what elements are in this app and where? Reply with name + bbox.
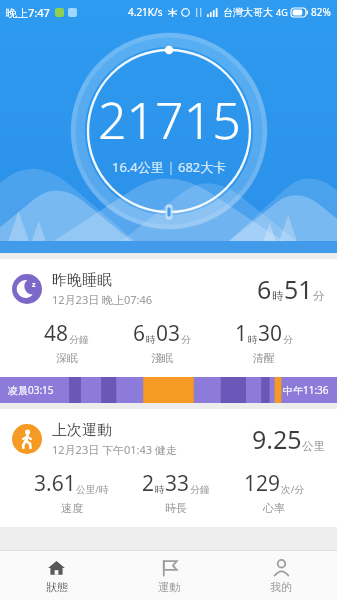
staticText: 我的 xyxy=(270,580,292,594)
staticText: 3.61 xyxy=(34,469,76,498)
staticText: | xyxy=(164,158,178,176)
staticText: 時 xyxy=(155,484,165,496)
staticText: 清醒 xyxy=(253,351,275,365)
staticText: 凌晨03:15 xyxy=(8,383,54,397)
staticText: 48 xyxy=(44,319,69,348)
button[interactable]: 運動 xyxy=(113,551,225,600)
staticText: 時 xyxy=(248,334,258,346)
staticText: 分 xyxy=(313,289,325,303)
staticText: 狀態 xyxy=(46,580,68,594)
staticText: 16.4公里 xyxy=(112,158,164,176)
staticText: 深眠 xyxy=(56,351,78,365)
staticText: 運動 xyxy=(158,580,180,594)
staticText: 4G xyxy=(276,6,288,18)
staticText: 21715 xyxy=(98,86,241,154)
staticText: 分 xyxy=(283,334,293,346)
staticText: 心率 xyxy=(263,501,285,515)
staticText: 淺眠 xyxy=(151,351,173,365)
staticText: 公里 xyxy=(302,439,325,453)
staticText: 公里/時 xyxy=(76,483,109,496)
staticText: 1 xyxy=(235,319,248,348)
button[interactable]: 狀態 xyxy=(0,551,113,600)
staticText: 晚上7:47 xyxy=(6,5,50,20)
button[interactable]: 上次運動 xyxy=(0,409,337,527)
button[interactable]: z xyxy=(0,259,337,403)
staticText: 82% xyxy=(311,5,331,19)
staticText: 分 xyxy=(181,334,191,346)
staticText: 51 xyxy=(284,272,313,306)
staticText: 時 xyxy=(146,334,156,346)
button[interactable]: 我的 xyxy=(225,551,337,600)
staticText: 上次運動 xyxy=(52,421,112,440)
staticText: 682大卡 xyxy=(178,158,227,176)
staticText: 中午11:36 xyxy=(283,383,329,397)
staticText: 30 xyxy=(258,319,283,348)
staticText: 03 xyxy=(156,319,181,348)
staticText: 速度 xyxy=(61,501,83,515)
staticText: z xyxy=(32,280,36,290)
staticText: 9.25 xyxy=(252,422,302,456)
staticText: 6 xyxy=(257,272,272,306)
staticText: 12月23日 下午01:43 健走 xyxy=(52,442,178,457)
staticText: 4.21K/s xyxy=(128,5,163,19)
staticText: 33 xyxy=(165,469,190,498)
staticText: 6 xyxy=(133,319,146,348)
staticText: 時 xyxy=(272,289,284,303)
staticText: 2 xyxy=(142,469,155,498)
staticText: 次/分 xyxy=(281,483,304,496)
staticText: 分鐘 xyxy=(69,334,89,346)
staticText: 台灣大哥大 xyxy=(223,6,273,19)
staticText: 昨晚睡眠 xyxy=(52,271,112,290)
staticText: 時長 xyxy=(165,501,187,515)
staticText: 分鐘 xyxy=(190,484,210,496)
staticText: 12月23日 晚上07:46 xyxy=(52,292,153,307)
staticText: 129 xyxy=(244,469,281,498)
